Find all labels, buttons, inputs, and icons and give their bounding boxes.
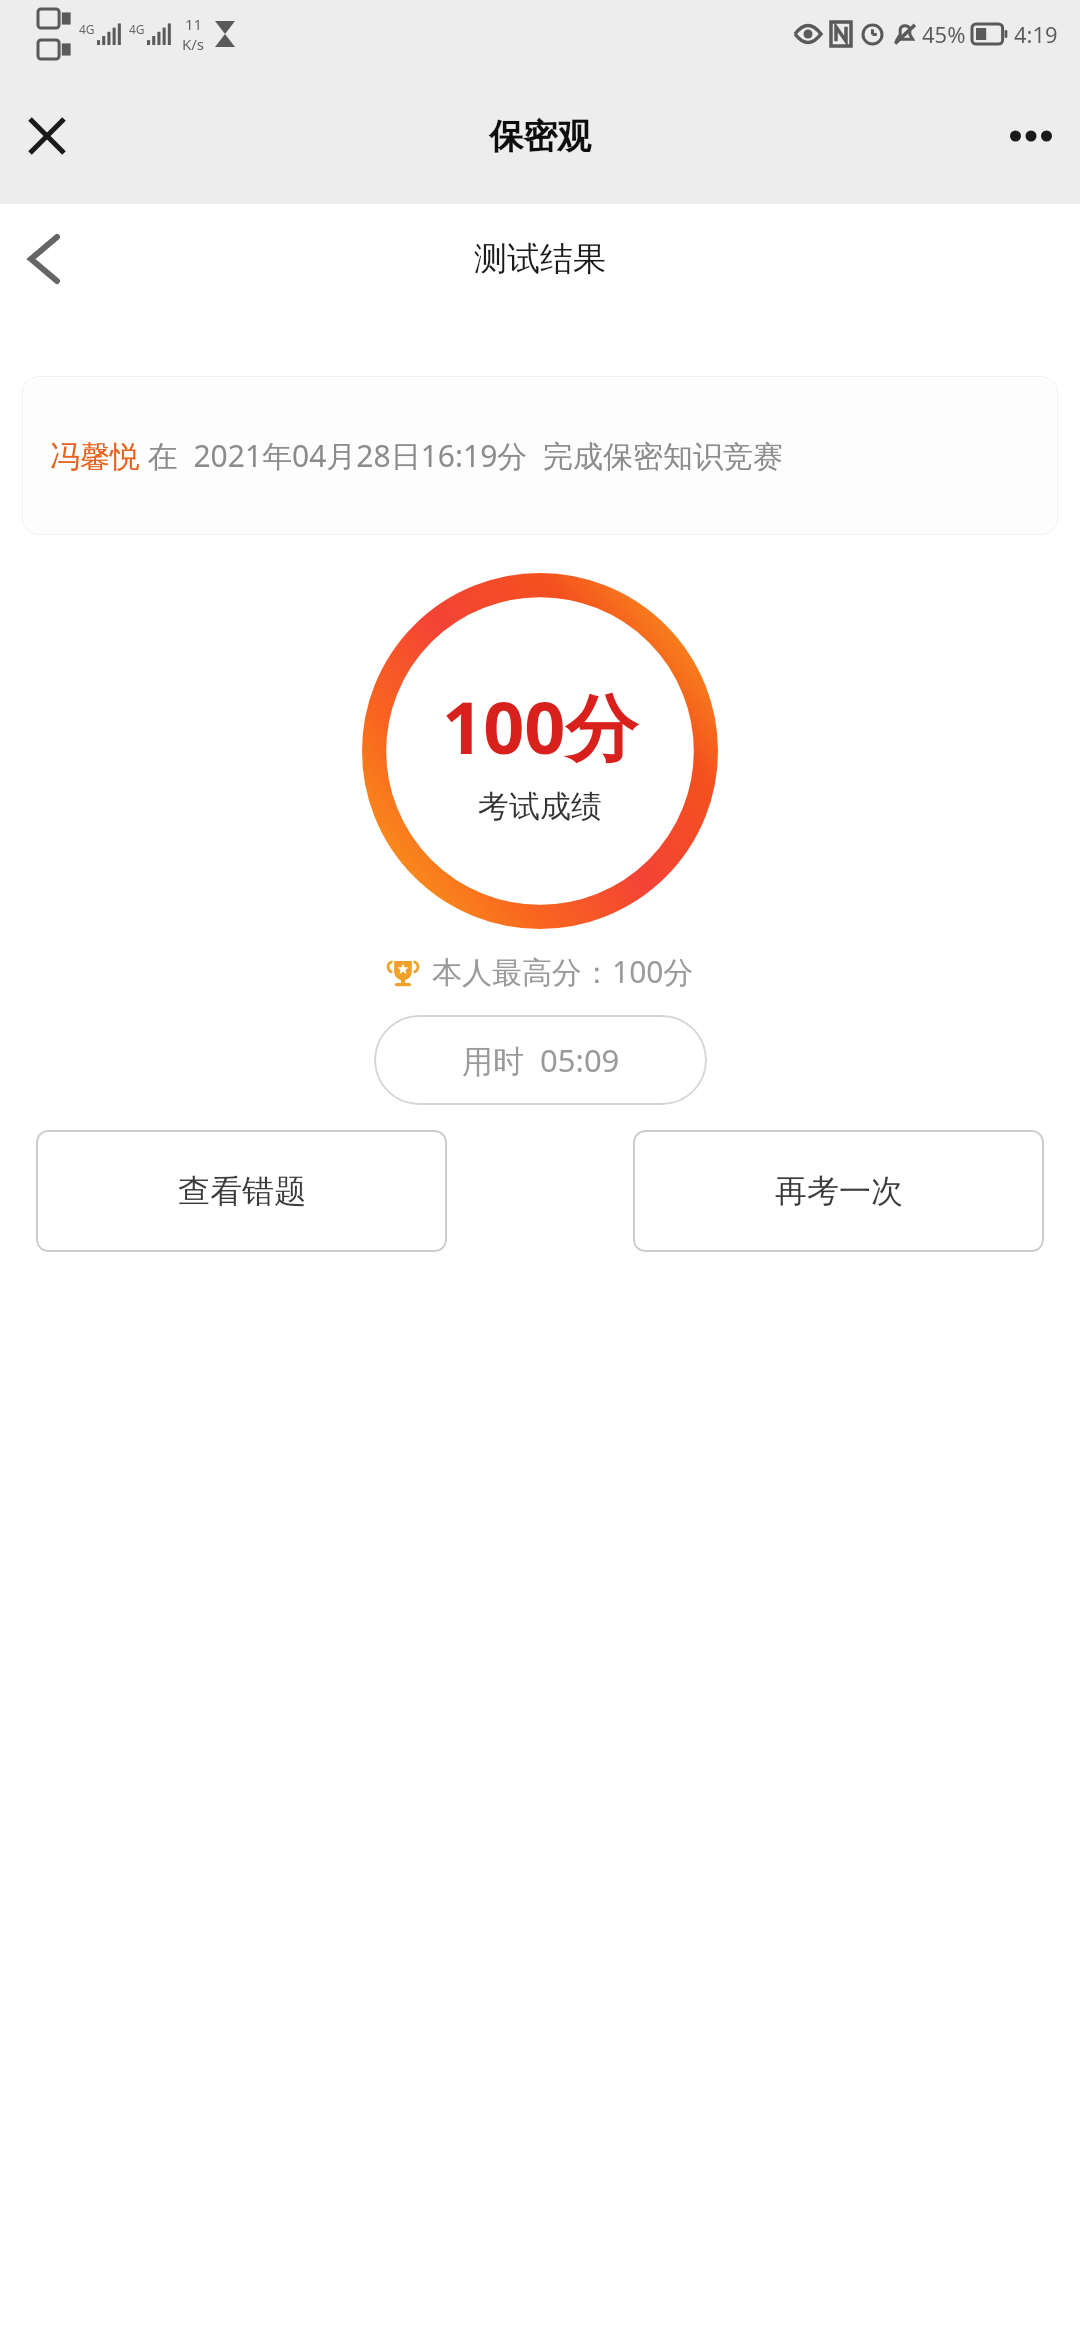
button[interactable]: 冯馨悦 在 2021年04月28日16:19分 完成保密知识竞赛: [22, 376, 1058, 535]
staticText: 冯馨悦 在 2021年04月28日16:19分 完成保密知识竞赛: [50, 435, 783, 476]
staticText: 4G: [79, 21, 95, 37]
staticText: 查看错题: [178, 1171, 306, 1211]
staticText: 4G: [129, 21, 145, 37]
staticText: K/s: [182, 34, 205, 54]
button[interactable]: Close: [18, 107, 76, 165]
staticText: 再考一次: [775, 1171, 903, 1211]
staticText: 100分: [442, 677, 638, 775]
button[interactable]: 用时 05:09: [374, 1015, 707, 1105]
staticText: 4:19: [1014, 19, 1058, 49]
button[interactable]: Back: [10, 225, 78, 293]
button[interactable]: More options: [1002, 107, 1060, 165]
staticText: 测试结果: [474, 238, 606, 280]
button[interactable]: 查看错题: [36, 1130, 447, 1252]
staticText: 本人最高分：100分: [432, 951, 694, 992]
staticText: 11: [185, 14, 203, 34]
staticText: 考试成绩: [478, 787, 602, 826]
button[interactable]: 再考一次: [633, 1130, 1044, 1252]
staticText: 用时 05:09: [462, 1039, 620, 1081]
staticText: 45%: [922, 19, 966, 49]
staticText: 保密观: [489, 115, 591, 158]
